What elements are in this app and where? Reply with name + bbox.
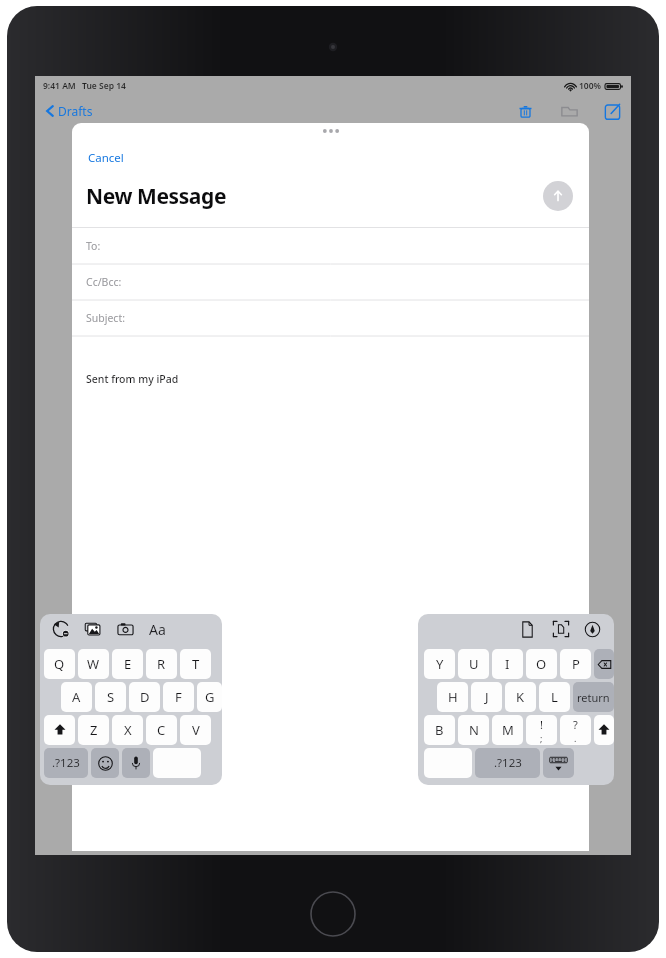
button[interactable]: Shift bbox=[594, 715, 614, 745]
staticText: G bbox=[205, 688, 215, 706]
staticText: Tue Sep 14 bbox=[82, 80, 126, 92]
button[interactable]: A bbox=[61, 682, 92, 712]
staticText: New Message bbox=[86, 182, 227, 211]
staticText: ! bbox=[540, 717, 543, 732]
button[interactable]: Markup bbox=[577, 615, 608, 643]
staticText: D bbox=[140, 688, 150, 706]
button[interactable]: Aa bbox=[142, 615, 172, 643]
button[interactable]: To: bbox=[72, 228, 589, 264]
staticText: I bbox=[505, 655, 510, 673]
button[interactable]: K bbox=[505, 682, 536, 712]
button[interactable]: Take photo bbox=[109, 615, 142, 643]
staticText: 9:41 AM bbox=[43, 80, 76, 92]
button[interactable]: Attach file bbox=[511, 615, 544, 643]
staticText: .?123 bbox=[494, 755, 522, 771]
staticText: A bbox=[72, 688, 81, 706]
button[interactable]: Cancel bbox=[86, 148, 126, 168]
staticText: J bbox=[485, 688, 489, 706]
staticText: S bbox=[107, 688, 115, 706]
button[interactable]: Q bbox=[44, 649, 75, 679]
button[interactable]: Delete bbox=[594, 649, 614, 679]
button[interactable]: N bbox=[458, 715, 489, 745]
staticText: E bbox=[124, 655, 132, 673]
button[interactable]: G bbox=[197, 682, 222, 712]
staticText: R bbox=[157, 655, 166, 673]
button[interactable]: V bbox=[180, 715, 211, 745]
button[interactable]: L bbox=[539, 682, 570, 712]
button[interactable]: Hide keyboard bbox=[543, 748, 574, 778]
staticText: C bbox=[157, 721, 166, 739]
staticText: ; bbox=[540, 732, 543, 744]
button[interactable]: Space bbox=[153, 748, 201, 778]
button[interactable]: X bbox=[112, 715, 143, 745]
staticText: O bbox=[536, 655, 547, 673]
button[interactable]: Cc/Bcc: bbox=[72, 264, 589, 300]
button[interactable]: W bbox=[78, 649, 109, 679]
button[interactable]: F bbox=[163, 682, 194, 712]
button[interactable]: P bbox=[560, 649, 591, 679]
button[interactable]: U bbox=[458, 649, 489, 679]
button[interactable]: Dictate bbox=[122, 748, 150, 778]
button[interactable]: O bbox=[526, 649, 557, 679]
button[interactable]: Subject: bbox=[72, 300, 589, 336]
button[interactable]: J bbox=[471, 682, 502, 712]
button[interactable]: Space bbox=[424, 748, 472, 778]
staticText: H bbox=[448, 688, 458, 706]
button[interactable]: I bbox=[492, 649, 523, 679]
staticText: 100% bbox=[579, 80, 602, 92]
button[interactable]: Exclamation bbox=[526, 715, 557, 745]
staticText: .?123 bbox=[52, 755, 80, 771]
staticText: B bbox=[435, 721, 444, 739]
staticText: N bbox=[469, 721, 479, 739]
staticText: Cancel bbox=[88, 150, 124, 166]
button[interactable]: M bbox=[492, 715, 523, 745]
staticText: Subject: bbox=[86, 311, 125, 325]
staticText: Z bbox=[90, 721, 98, 739]
staticText: M bbox=[502, 721, 514, 739]
staticText: U bbox=[469, 655, 479, 673]
staticText: F bbox=[175, 688, 182, 706]
staticText: Sent from my iPad bbox=[86, 372, 179, 386]
button[interactable]: Emoji bbox=[91, 748, 119, 778]
staticText: Q bbox=[54, 655, 65, 673]
staticText: W bbox=[87, 655, 100, 673]
button[interactable]: Scan document bbox=[544, 615, 577, 643]
staticText: V bbox=[192, 721, 200, 739]
button[interactable]: Y bbox=[424, 649, 455, 679]
button[interactable]: E bbox=[112, 649, 143, 679]
staticText: X bbox=[124, 721, 132, 739]
button[interactable]: .?123 bbox=[475, 748, 540, 778]
staticText: . bbox=[574, 732, 577, 744]
staticText: return bbox=[577, 690, 610, 705]
button[interactable]: Undo bbox=[45, 615, 76, 643]
button[interactable]: return bbox=[573, 682, 614, 712]
button[interactable]: H bbox=[437, 682, 468, 712]
staticText: Cc/Bcc: bbox=[86, 275, 122, 289]
button[interactable]: .?123 bbox=[44, 748, 88, 778]
button[interactable]: Insert photo bbox=[76, 615, 109, 643]
button[interactable]: T bbox=[180, 649, 211, 679]
button[interactable]: Send bbox=[543, 181, 573, 211]
button[interactable]: B bbox=[424, 715, 455, 745]
staticText: Drafts bbox=[58, 103, 93, 119]
button[interactable]: Shift bbox=[44, 715, 75, 745]
staticText: Aa bbox=[149, 620, 166, 639]
staticText: L bbox=[551, 688, 558, 706]
staticText: T bbox=[192, 655, 200, 673]
staticText: To: bbox=[86, 239, 101, 253]
staticText: Y bbox=[436, 655, 444, 673]
button[interactable]: R bbox=[146, 649, 177, 679]
button[interactable]: Z bbox=[78, 715, 109, 745]
staticText: ? bbox=[573, 717, 578, 732]
button[interactable]: Question bbox=[560, 715, 591, 745]
button[interactable]: S bbox=[95, 682, 126, 712]
staticText: P bbox=[572, 655, 580, 673]
button[interactable]: D bbox=[129, 682, 160, 712]
button[interactable]: C bbox=[146, 715, 177, 745]
staticText: K bbox=[516, 688, 525, 706]
